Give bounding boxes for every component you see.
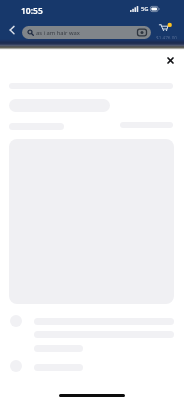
button[interactable]: Cart, $1,476.00 xyxy=(153,21,180,43)
staticText: 10:55 xyxy=(21,5,43,17)
staticText: as i am hair wax xyxy=(36,29,80,37)
staticText: $1,476.00 xyxy=(153,35,180,41)
button[interactable]: Close xyxy=(160,50,180,70)
button[interactable]: Back xyxy=(5,23,21,39)
button[interactable]: Search with camera xyxy=(137,28,147,37)
staticText: 5G xyxy=(141,5,149,13)
button[interactable]: as i am hair wax xyxy=(22,26,151,39)
